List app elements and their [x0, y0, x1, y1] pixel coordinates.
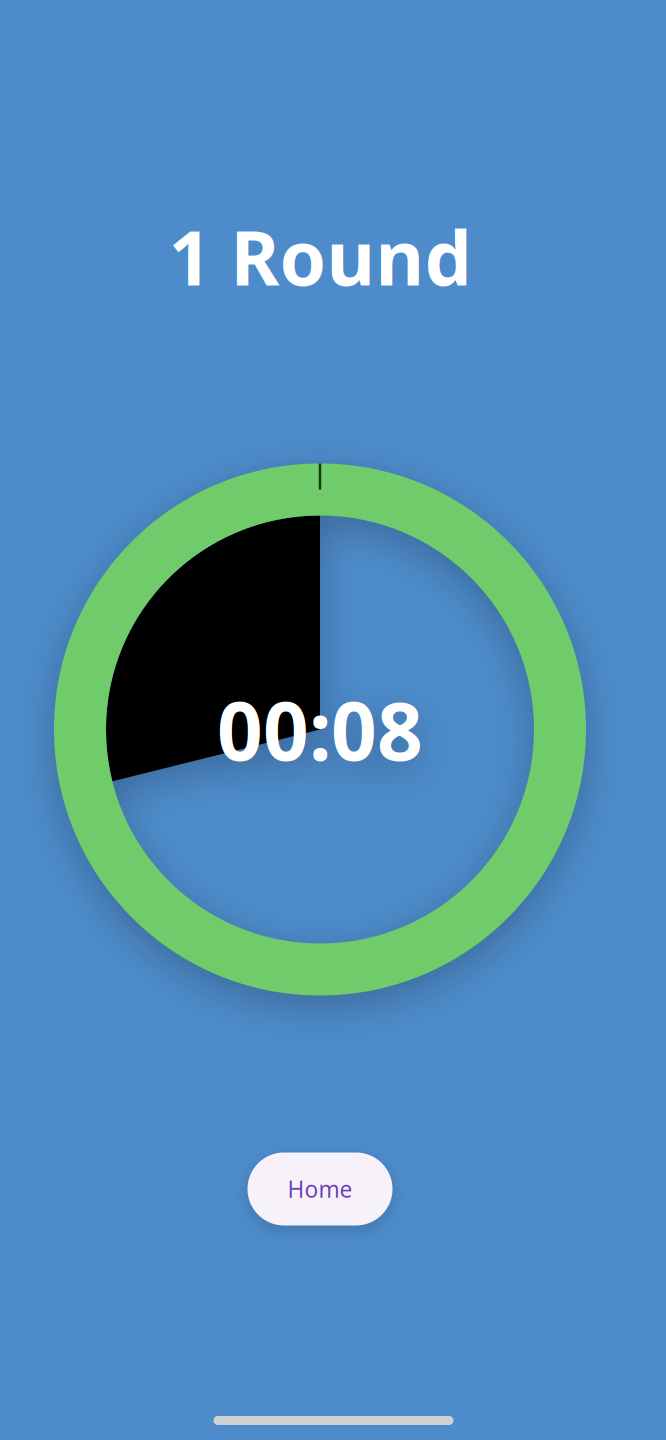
staticText: Home [287, 1174, 352, 1204]
button[interactable]: Home [247, 1152, 392, 1225]
staticText: 00:08 [217, 676, 423, 783]
staticText: 1 Round [168, 207, 471, 306]
